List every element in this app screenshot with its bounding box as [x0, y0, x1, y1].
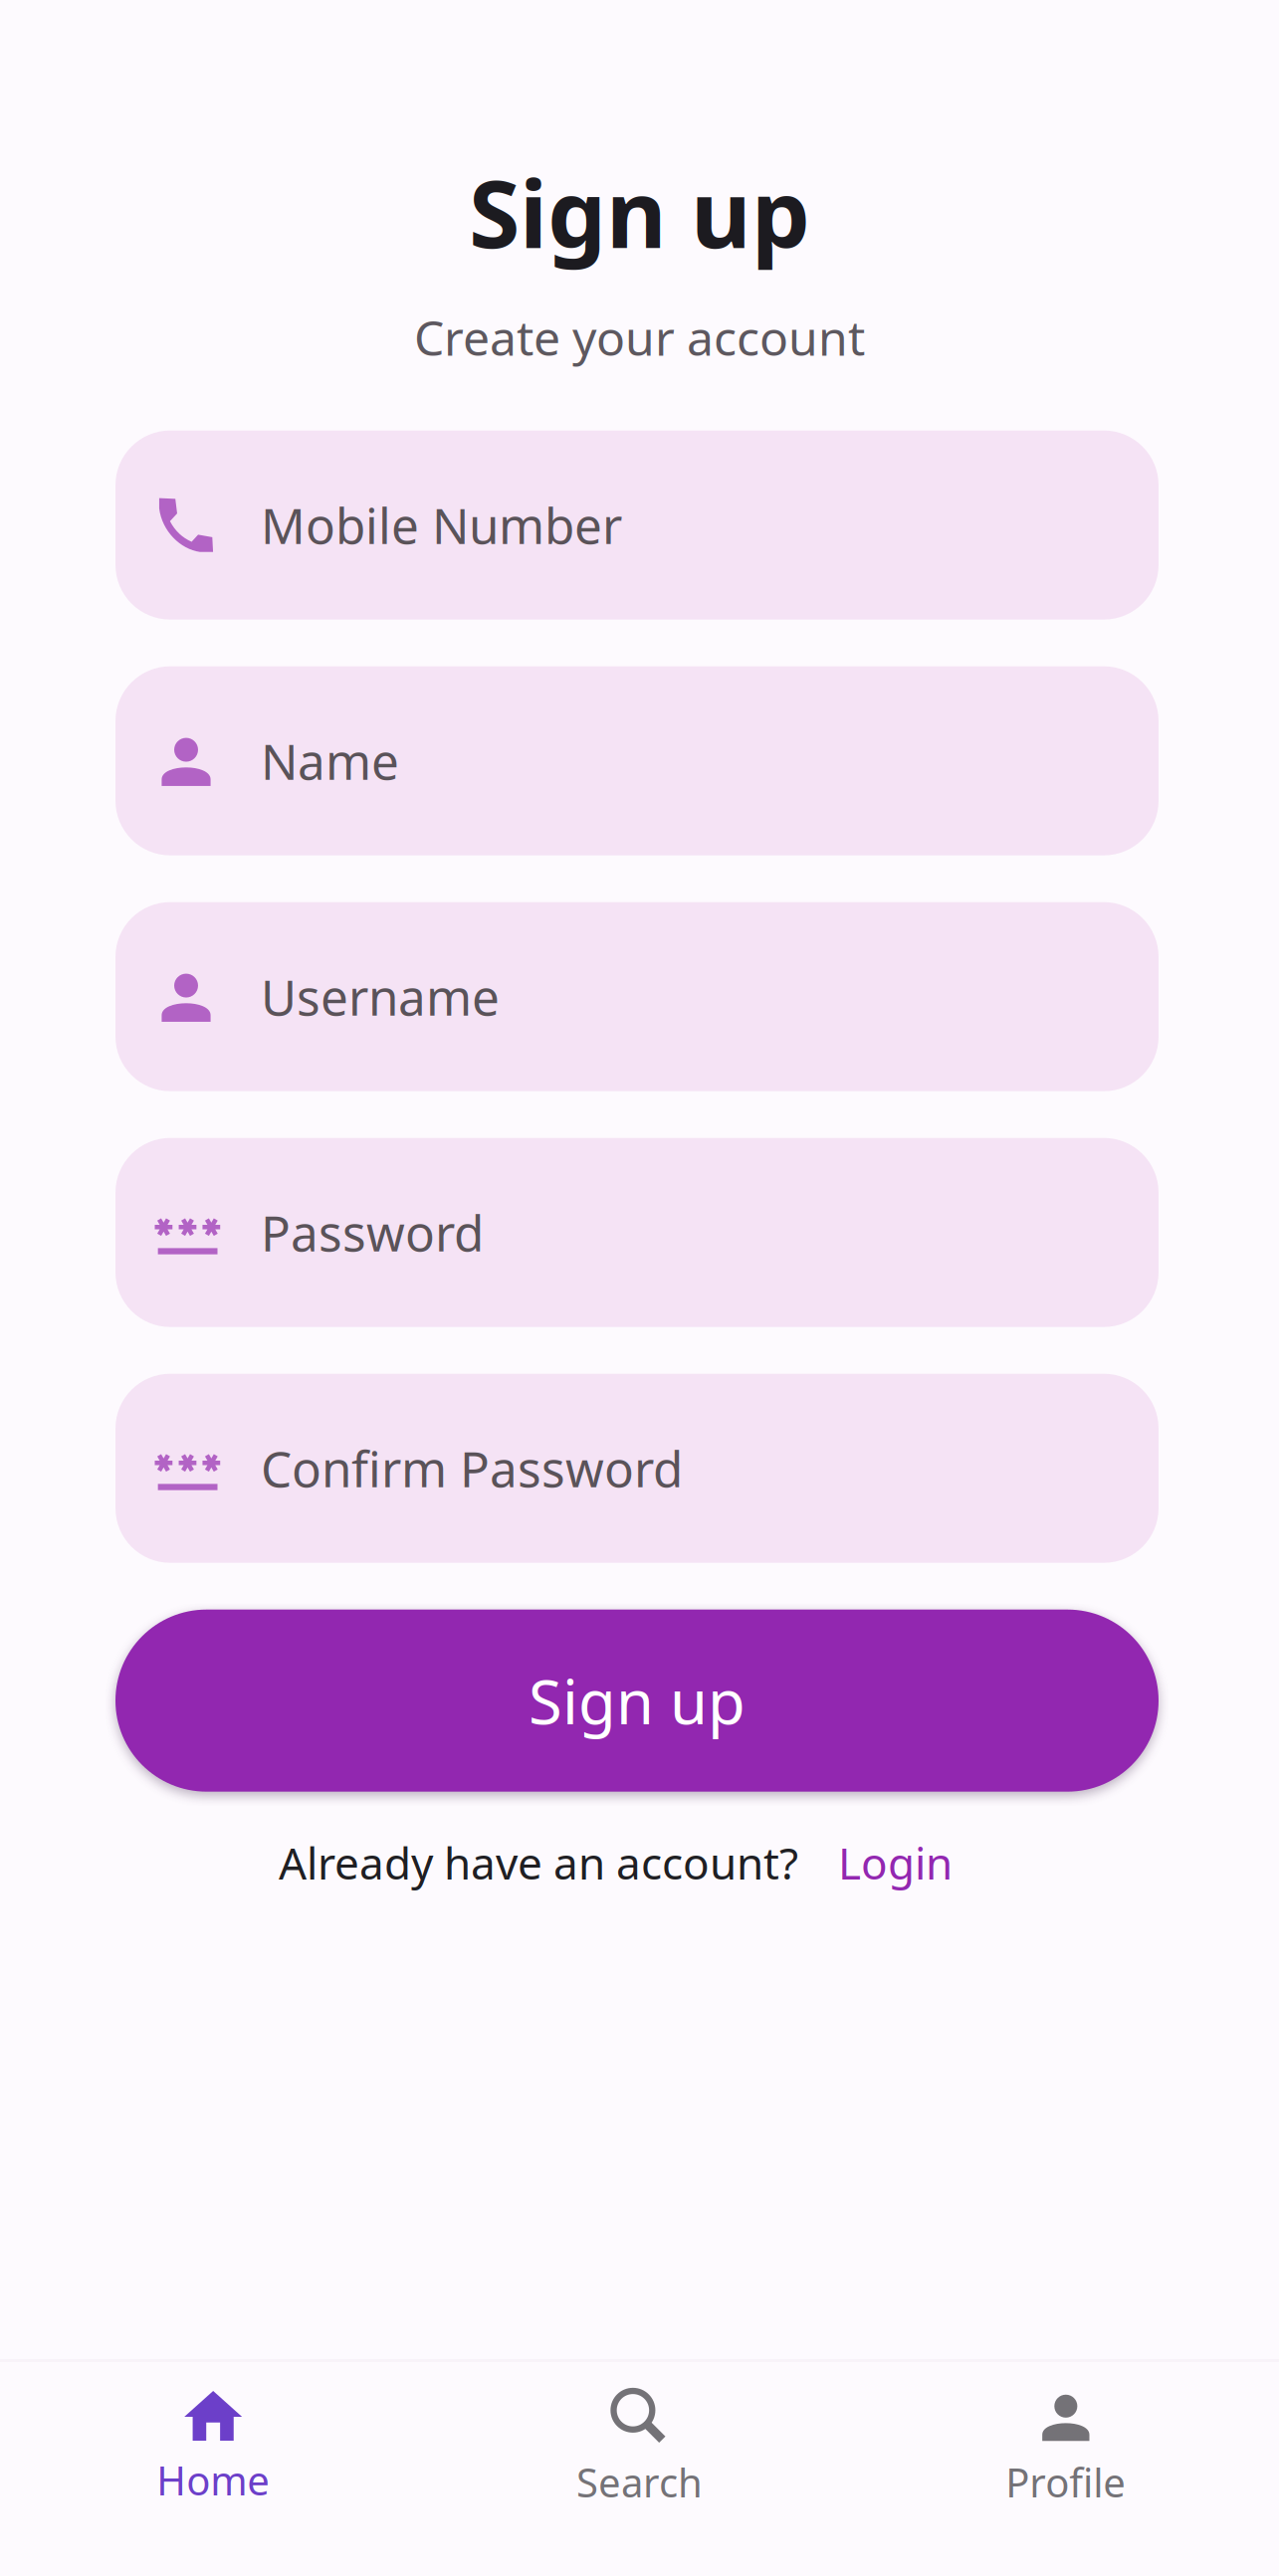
staticText: Password — [261, 1200, 484, 1265]
staticText: Create your account — [414, 305, 865, 369]
staticText: Already have an account? — [279, 1833, 798, 1892]
button[interactable]: Sign up — [115, 1610, 1159, 1792]
button[interactable]: Confirm Password — [115, 1374, 1159, 1563]
staticText: Confirm Password — [261, 1436, 683, 1501]
staticText: Home — [156, 2454, 270, 2506]
staticText: Mobile Number — [261, 492, 622, 558]
button[interactable]: Profile — [853, 2391, 1279, 2526]
staticText: Username — [261, 964, 500, 1029]
staticText: Search — [576, 2456, 703, 2508]
button[interactable]: Mobile Number — [115, 431, 1159, 620]
button[interactable]: Name — [115, 666, 1159, 855]
button[interactable]: Username — [115, 902, 1159, 1091]
button[interactable]: Search — [426, 2391, 853, 2526]
staticText: Login — [838, 1833, 953, 1892]
staticText: Sign up — [469, 150, 810, 274]
staticText: Sign up — [529, 1660, 746, 1741]
button[interactable]: Password — [115, 1138, 1159, 1327]
staticText: Profile — [1006, 2456, 1126, 2508]
button[interactable]: Login — [838, 1833, 1000, 1892]
button[interactable]: Home — [0, 2391, 426, 2526]
staticText: Name — [261, 728, 399, 793]
